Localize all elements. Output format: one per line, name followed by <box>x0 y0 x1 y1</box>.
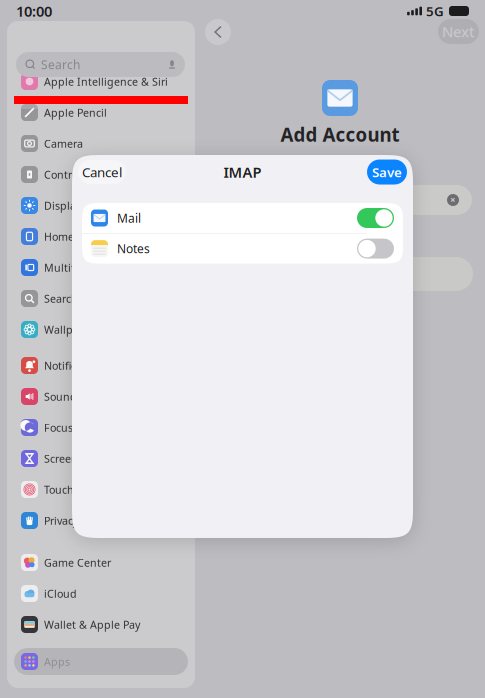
staticText: Cancel <box>82 163 122 181</box>
button[interactable]: Apple Intelligence & Siri <box>14 68 188 95</box>
staticText: Screen Time <box>44 451 106 466</box>
button[interactable]: iCloud <box>14 580 188 607</box>
staticText: Home Screen & App Library <box>44 229 181 244</box>
staticText: Notes <box>117 241 150 256</box>
staticText: Next <box>442 22 475 41</box>
staticText: list. <box>372 215 397 234</box>
staticText: Save <box>372 163 402 181</box>
button[interactable]: Display & Brightness <box>14 192 188 219</box>
button[interactable]: Screen Time <box>14 445 188 472</box>
staticText: Add Account <box>280 122 399 147</box>
staticText: Wallpaper <box>44 322 96 337</box>
staticText: Apple Intelligence & Siri <box>44 74 168 89</box>
staticText: Mail <box>117 210 141 226</box>
button[interactable]: Wallpaper <box>14 316 188 343</box>
staticText: Search <box>41 56 80 72</box>
staticText: Notifications <box>44 358 107 373</box>
button[interactable]: Game Center <box>14 549 188 576</box>
button[interactable]: Multitasking & Gestures <box>14 254 188 281</box>
button[interactable]: Privacy & Security <box>14 507 188 534</box>
staticText: 10:00 <box>16 1 52 21</box>
staticText: iCloud <box>44 586 77 601</box>
staticText: Search <box>44 291 78 306</box>
button[interactable]: Control Center <box>14 161 188 188</box>
staticText: Focus <box>44 420 73 435</box>
button[interactable]: Apple Pencil <box>14 99 188 126</box>
staticText: Camera <box>44 136 83 151</box>
button[interactable]: Next <box>438 19 479 44</box>
button[interactable]: Camera <box>14 130 188 157</box>
staticText: Wallet & Apple Pay <box>44 617 140 632</box>
button[interactable]: Save <box>367 159 407 184</box>
button[interactable]: Apps <box>14 648 188 675</box>
button[interactable]: Wallet & Apple Pay <box>14 611 188 638</box>
staticText: Privacy & Security <box>44 513 132 528</box>
staticText: 5G <box>426 2 444 20</box>
button[interactable]: Cancel <box>78 160 126 184</box>
staticText: Game Center <box>44 555 111 570</box>
staticText: IMAP <box>223 162 261 182</box>
staticText: Control Center <box>44 167 118 182</box>
button[interactable]: Sounds <box>14 383 188 410</box>
button[interactable]: Notes <box>82 234 403 264</box>
button[interactable]: Focus <box>14 414 188 441</box>
button[interactable]: Mail <box>82 203 403 233</box>
staticText: Sounds <box>44 389 82 404</box>
staticText: Apple Pencil <box>44 105 107 120</box>
staticText: Touch ID & Passcode <box>44 482 149 497</box>
button[interactable]: Notifications <box>14 352 188 379</box>
button[interactable]: Touch ID & Passcode <box>14 476 188 503</box>
staticText: Multitasking & Gestures <box>44 260 168 275</box>
button[interactable]: Home Screen & App Library <box>14 223 188 250</box>
button[interactable]: Search <box>14 285 188 312</box>
button[interactable]: Back <box>202 16 234 48</box>
staticText: Display & Brightness <box>44 198 150 213</box>
staticText: Apps <box>44 654 70 669</box>
